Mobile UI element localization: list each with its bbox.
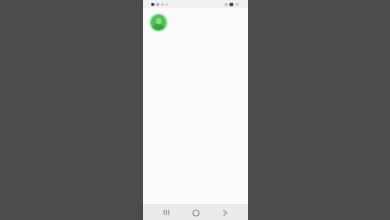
button[interactable] [189, 206, 202, 219]
button[interactable] [160, 206, 173, 219]
button[interactable] [218, 206, 231, 219]
button[interactable] [148, 12, 169, 33]
